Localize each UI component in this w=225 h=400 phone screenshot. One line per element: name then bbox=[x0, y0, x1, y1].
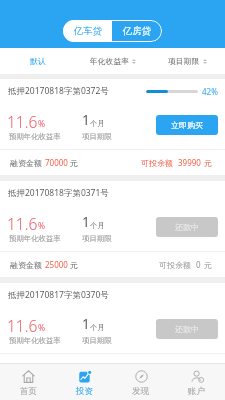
staticText: 发现 bbox=[132, 386, 150, 397]
staticText: 项目期限 bbox=[82, 336, 112, 345]
button[interactable]: 项目期限 bbox=[150, 48, 225, 74]
staticText: 元 bbox=[68, 157, 79, 168]
button[interactable]: 发现 bbox=[113, 364, 169, 400]
staticText: 11.6 bbox=[7, 213, 38, 234]
staticText: 0 bbox=[196, 259, 201, 270]
staticText: 70000 bbox=[45, 157, 68, 168]
button[interactable]: 还款中 bbox=[156, 319, 218, 339]
staticText: 元 bbox=[204, 260, 212, 270]
staticText: 个月 bbox=[90, 323, 105, 332]
staticText: 融资金额 bbox=[10, 361, 45, 372]
staticText: 账户 bbox=[188, 386, 206, 397]
staticText: 项目期限 bbox=[82, 132, 112, 141]
staticText: 0 bbox=[196, 361, 201, 372]
staticText: 还款中 bbox=[175, 324, 199, 334]
staticText: 默认 bbox=[30, 56, 46, 66]
staticText: 项目期限 bbox=[168, 56, 200, 66]
staticText: % bbox=[38, 118, 46, 130]
staticText: 亿房贷 bbox=[123, 25, 151, 37]
button[interactable]: 投资 bbox=[57, 364, 113, 400]
staticText: 抵押20170818字第0371号 bbox=[8, 187, 109, 199]
button[interactable]: 默认 bbox=[0, 48, 75, 74]
staticText: 个月 bbox=[90, 221, 105, 230]
staticText: 年化收益率 bbox=[90, 56, 129, 66]
staticText: 元 bbox=[68, 259, 79, 270]
staticText: 可投余额 bbox=[159, 362, 191, 372]
staticText: 1 bbox=[82, 315, 90, 333]
staticText: 11.6 bbox=[7, 111, 38, 132]
staticText: 42% bbox=[202, 86, 218, 97]
staticText: 1 bbox=[82, 213, 90, 231]
staticText: 预期年化收益率 bbox=[9, 132, 61, 141]
staticText: 立即购买 bbox=[171, 120, 203, 130]
staticText: 个月 bbox=[90, 119, 105, 128]
staticText: 融资金额 bbox=[10, 259, 45, 270]
staticText: 可投余额 bbox=[159, 260, 191, 270]
staticText: 1 bbox=[82, 111, 90, 129]
button[interactable]: 首页 bbox=[0, 364, 57, 400]
staticText: 元 bbox=[68, 361, 79, 372]
button[interactable]: 亿房贷 bbox=[112, 20, 162, 42]
staticText: 还款中 bbox=[175, 222, 199, 232]
staticText: 融资金额 bbox=[10, 157, 45, 168]
staticText: 预期年化收益率 bbox=[9, 336, 61, 345]
staticText: 11.6 bbox=[7, 315, 38, 336]
button[interactable]: 年化收益率 bbox=[75, 48, 150, 74]
staticText: 可投余额 bbox=[141, 158, 173, 168]
staticText: 39990 bbox=[178, 157, 201, 168]
staticText: 投资 bbox=[76, 386, 94, 397]
staticText: 25000 bbox=[45, 259, 68, 270]
button[interactable]: 账户 bbox=[169, 364, 225, 400]
staticText: 预期年化收益率 bbox=[9, 234, 61, 243]
staticText: 元 bbox=[204, 158, 212, 168]
staticText: % bbox=[38, 220, 46, 232]
button[interactable]: 亿车贷 bbox=[63, 20, 112, 42]
button[interactable]: 立即购买 bbox=[156, 115, 218, 135]
staticText: 元 bbox=[204, 362, 212, 372]
staticText: % bbox=[38, 322, 46, 334]
staticText: 亿车贷 bbox=[74, 25, 102, 37]
staticText: 抵押20170817字第0370号 bbox=[8, 289, 109, 301]
button[interactable]: 还款中 bbox=[156, 217, 218, 237]
staticText: 抵押20170818字第0372号 bbox=[8, 85, 109, 97]
staticText: 25000 bbox=[45, 361, 68, 372]
staticText: 项目期限 bbox=[82, 234, 112, 243]
staticText: 首页 bbox=[20, 386, 38, 397]
